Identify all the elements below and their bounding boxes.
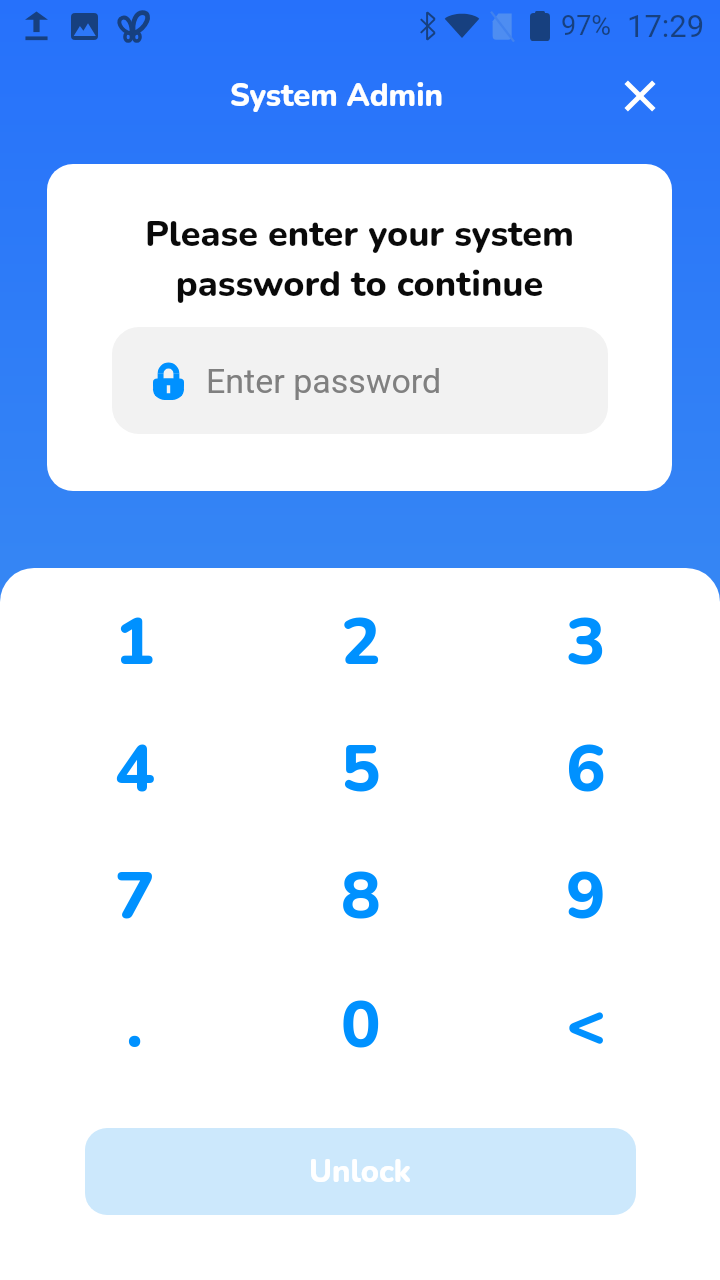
staticText: 97% [561,10,612,42]
button[interactable]: 5 [248,705,473,833]
button[interactable]: 3 [473,578,698,706]
staticText: Unlock [309,1151,412,1193]
staticText: 6 [566,724,606,814]
staticText: . [126,980,144,1070]
button[interactable]: 6 [473,705,698,833]
button[interactable]: Unlock [85,1128,636,1215]
button[interactable]: 8 [248,832,473,960]
button[interactable]: 7 [22,832,248,960]
button[interactable]: Backspace [473,961,698,1089]
button[interactable]: 1 [22,578,248,706]
staticText: 0 [341,980,381,1070]
button[interactable]: 2 [248,578,473,706]
button[interactable]: Decimal point [22,961,248,1089]
staticText: 5 [341,724,381,814]
staticText: 7 [115,851,155,941]
button[interactable]: 4 [22,705,248,833]
staticText: 1 [115,597,155,687]
button[interactable]: Enter password [112,327,608,434]
staticText: 8 [341,851,381,941]
staticText: 4 [115,724,155,814]
staticText: System Admin [230,75,443,117]
button[interactable]: 0 [248,961,473,1089]
button[interactable]: Close [612,68,668,124]
staticText: < [566,980,606,1070]
staticText: 17:29 [627,8,705,44]
staticText: Enter password [206,361,442,401]
staticText: 3 [566,597,606,687]
staticText: 9 [566,851,606,941]
button[interactable]: 9 [473,832,698,960]
staticText: Please enter your system password to con… [107,210,612,309]
staticText: 2 [341,597,381,687]
